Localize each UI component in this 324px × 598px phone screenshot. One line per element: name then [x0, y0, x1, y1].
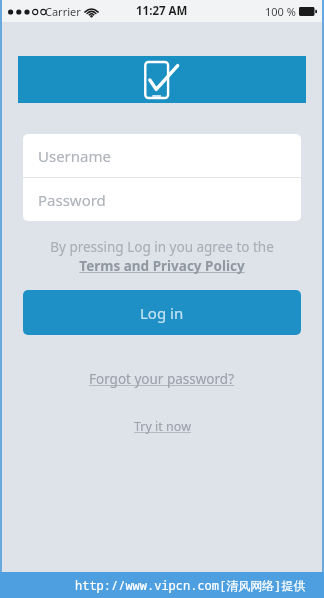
staticText: Log in — [140, 303, 184, 323]
button[interactable]: Username — [23, 134, 301, 177]
staticText: Carrier — [45, 4, 81, 19]
staticText: http://www.vipcn.com[清风网络]提供 — [75, 577, 306, 593]
button[interactable]: Log in — [23, 290, 301, 335]
button[interactable]: Password — [23, 178, 301, 221]
staticText: Password — [38, 190, 106, 210]
staticText: By pressing Log in you agree to the — [50, 238, 274, 256]
button[interactable]: Forgot your password? — [83, 368, 241, 390]
staticText: 11:27 AM — [136, 3, 188, 19]
staticText: 100 % — [265, 4, 296, 19]
staticText: Username — [38, 146, 111, 166]
button[interactable]: Terms and Privacy Policy — [79, 257, 245, 275]
button[interactable]: Try it now — [128, 416, 197, 437]
staticText: Forgot your password? — [89, 370, 235, 388]
staticText: Try it now — [134, 418, 191, 435]
staticText: Terms and Privacy Policy — [79, 257, 245, 275]
